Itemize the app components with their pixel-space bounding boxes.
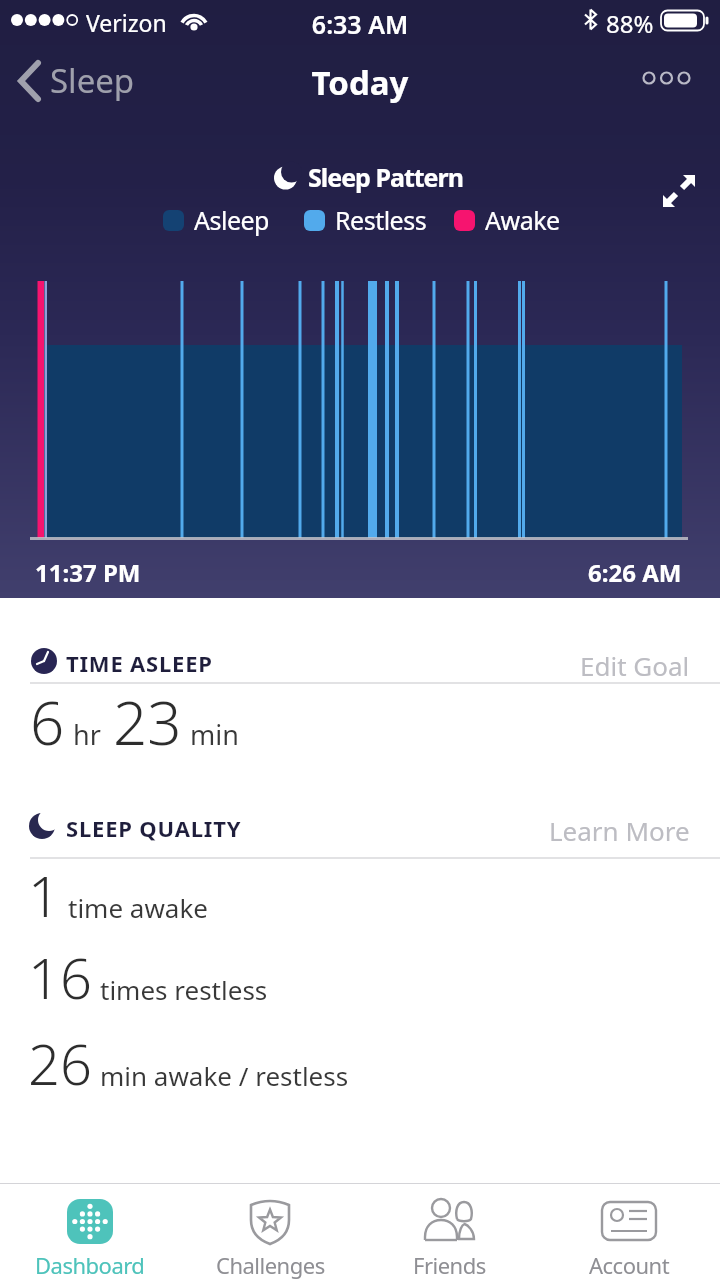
staticText: 23 (113, 681, 182, 763)
staticText: Verizon (86, 7, 167, 38)
staticText: 6:26 AM (588, 556, 682, 589)
button[interactable]: Challenges (195, 1193, 345, 1280)
staticText: Today (0, 60, 720, 105)
staticText: hr (73, 716, 101, 753)
staticText: Account (589, 1250, 670, 1280)
staticText: 6 (30, 681, 65, 763)
staticText: Dashboard (35, 1250, 145, 1280)
staticText: times restless (100, 972, 268, 1007)
staticText: Asleep (194, 203, 269, 237)
staticText: Restless (335, 203, 427, 237)
staticText: 88% (606, 7, 654, 40)
button[interactable] (640, 70, 696, 88)
button[interactable]: Sleep (14, 58, 135, 103)
staticText: Sleep Pattern (308, 160, 463, 194)
staticText: min (190, 716, 239, 753)
staticText: Sleep (50, 58, 135, 103)
button[interactable]: Dashboard (15, 1193, 165, 1280)
staticText: Awake (485, 203, 560, 237)
staticText: 6:33 AM (0, 7, 720, 41)
staticText: TIME ASLEEP (66, 648, 213, 678)
button[interactable]: Friends (374, 1193, 524, 1280)
staticText: SLEEP QUALITY (66, 813, 242, 843)
staticText: 26 (28, 1025, 92, 1101)
staticText: 1 (28, 857, 60, 933)
staticText: time awake (68, 890, 208, 925)
staticText: Challenges (216, 1250, 325, 1280)
staticText: 11:37 PM (35, 556, 141, 589)
staticText: min awake / restless (100, 1058, 349, 1093)
button[interactable] (658, 170, 702, 214)
button[interactable]: Account (554, 1193, 704, 1280)
staticText: Friends (413, 1250, 486, 1280)
button[interactable]: Learn More (549, 813, 690, 848)
staticText: 16 (28, 939, 92, 1015)
button[interactable]: Edit Goal (580, 648, 690, 683)
